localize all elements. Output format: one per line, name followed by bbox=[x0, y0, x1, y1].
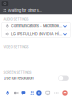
staticText: SCREEN SETTINGS bbox=[4, 71, 32, 74]
staticText: AUDIO SETTINGS bbox=[4, 17, 29, 21]
staticText: LG IPS FULLHD (NVIDIA High Definit bbox=[11, 32, 62, 36]
button[interactable]: Camera bbox=[13, 88, 19, 97]
button[interactable]: Communications - Microflow (Realtek bbox=[2, 22, 70, 30]
button[interactable]: LG IPS FULLHD (NVIDIA High Definit bbox=[2, 30, 70, 38]
button[interactable]: Leave call bbox=[62, 88, 68, 97]
staticText: Use full resolution bbox=[4, 76, 34, 80]
button[interactable]: Record bbox=[36, 88, 42, 97]
button[interactable]: Chat bbox=[20, 88, 26, 97]
button[interactable]: Share screen bbox=[45, 88, 51, 97]
staticText: Communications - Microflow (Realtek bbox=[11, 24, 62, 28]
button[interactable]: Microphone bbox=[5, 88, 11, 97]
button[interactable]: Participants bbox=[29, 88, 35, 97]
button[interactable]: More options bbox=[53, 88, 59, 97]
staticText: Waiting for others... bbox=[8, 8, 42, 13]
staticText: VIDEO SETTINGS bbox=[4, 45, 29, 49]
